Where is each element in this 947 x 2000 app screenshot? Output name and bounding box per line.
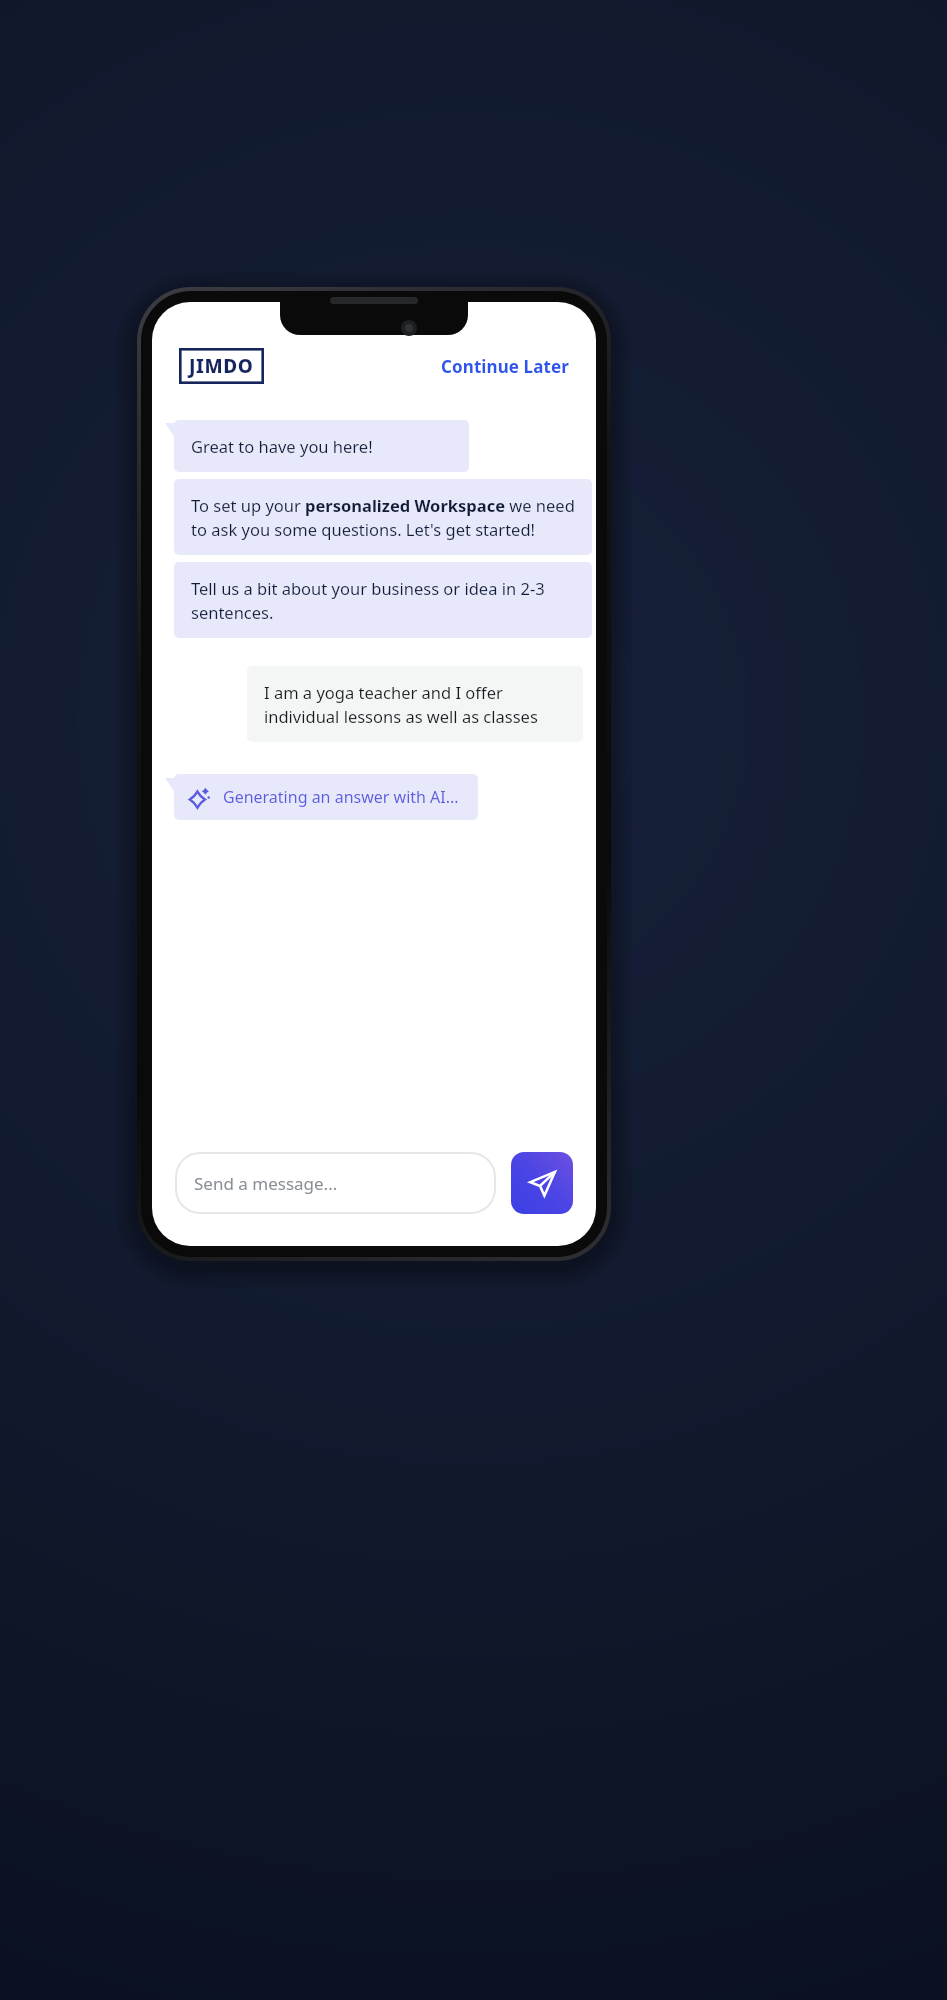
button[interactable]: Send a message...: [175, 1152, 496, 1214]
button[interactable]: Send: [511, 1152, 573, 1214]
staticText: JIMDO: [189, 353, 254, 379]
staticText: Send a message...: [194, 1172, 338, 1195]
button[interactable]: Generating an answer with AI...: [174, 774, 478, 820]
button[interactable]: Great to have you here!: [174, 420, 469, 472]
button[interactable]: Continue Later: [441, 355, 569, 378]
staticText: Tell us a bit about your business or ide…: [191, 577, 575, 623]
button[interactable]: Tell us a bit about your business or ide…: [174, 562, 592, 638]
staticText: Continue Later: [441, 355, 569, 378]
staticText: I am a yoga teacher and I offer individu…: [264, 681, 566, 727]
button[interactable]: I am a yoga teacher and I offer individu…: [247, 666, 583, 742]
button[interactable]: Jimdo: [179, 348, 264, 384]
button[interactable]: To set up your personalized Workspace we…: [174, 479, 592, 555]
staticText: Great to have you here!: [191, 435, 373, 457]
staticText: Generating an answer with AI...: [223, 786, 459, 808]
staticText: To set up your personalized Workspace we…: [191, 494, 575, 540]
